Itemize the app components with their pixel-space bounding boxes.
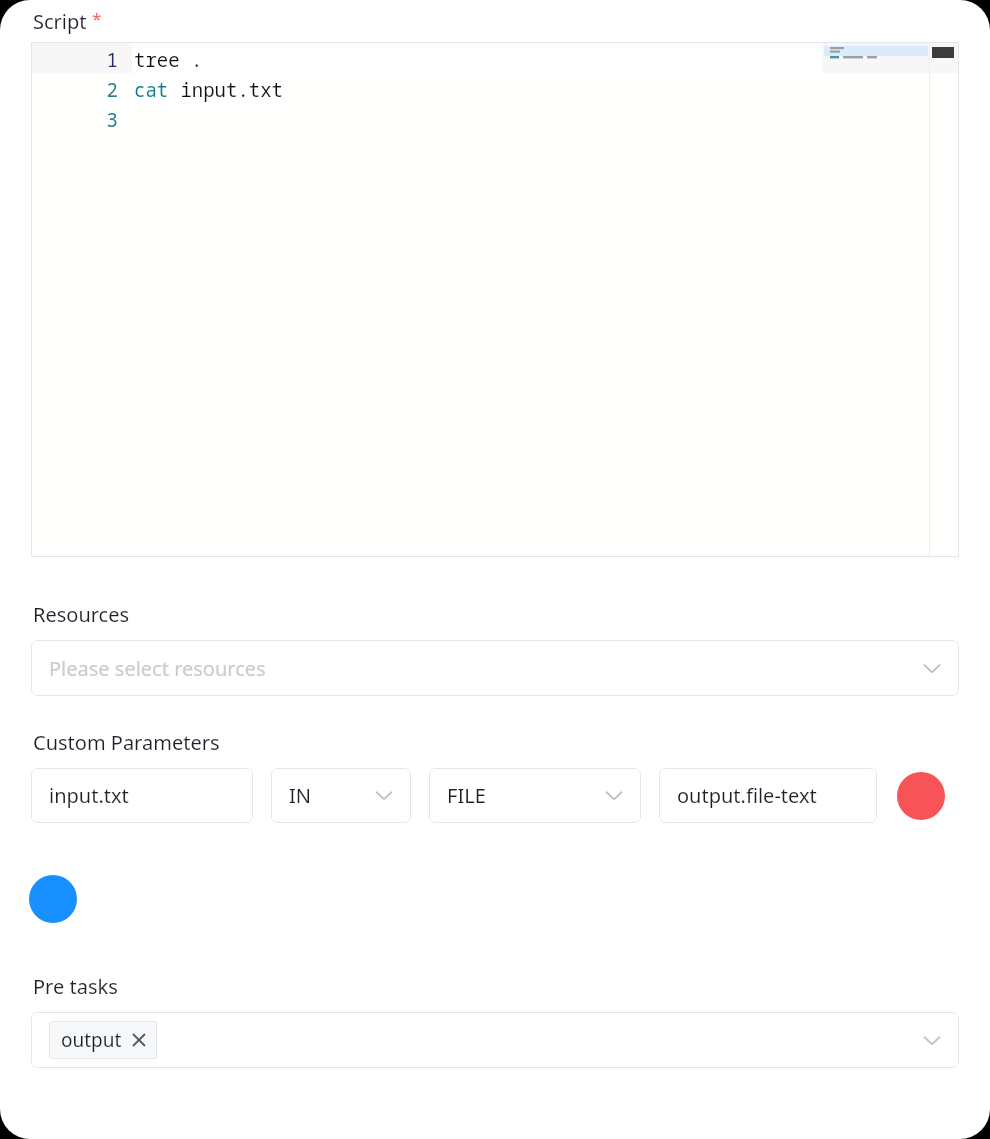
staticText: tree . [134, 47, 203, 73]
staticText: output [61, 1027, 122, 1053]
staticText: Please select resources [49, 655, 266, 682]
staticText: Pre tasks [33, 973, 118, 1000]
button[interactable]: 1 [31, 42, 959, 557]
staticText: 2 [106, 77, 118, 103]
button[interactable]: Remove output tag [131, 1032, 147, 1048]
staticText: input.txt [169, 77, 284, 103]
staticText: * [92, 7, 102, 30]
staticText: FILE [447, 782, 486, 809]
button[interactable]: Remove parameter [897, 772, 945, 820]
staticText: output.file-text [677, 782, 817, 809]
button[interactable]: Add parameter [29, 875, 77, 923]
staticText: IN [289, 782, 311, 809]
button[interactable]: input.txt [31, 768, 253, 823]
staticText: 1 [106, 47, 118, 73]
button[interactable]: Please select resources [31, 640, 959, 696]
staticText: Script [33, 8, 87, 35]
button[interactable]: IN [271, 768, 411, 823]
staticText: 3 [106, 107, 118, 133]
button[interactable]: output [31, 1012, 959, 1068]
button[interactable]: output [61, 1021, 147, 1059]
staticText: input.txt [49, 782, 129, 809]
staticText: Custom Parameters [33, 729, 220, 756]
staticText: cat [134, 77, 169, 103]
button[interactable]: FILE [429, 768, 641, 823]
button[interactable]: output.file-text [659, 768, 877, 823]
staticText: Resources [33, 601, 130, 628]
